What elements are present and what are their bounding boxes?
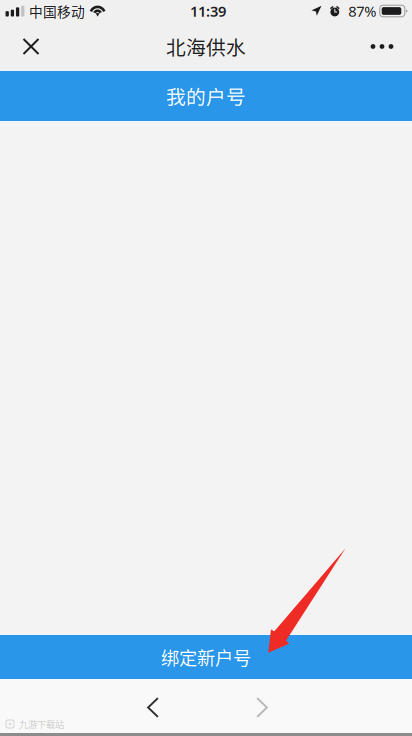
button[interactable]: 关闭 [9, 24, 53, 68]
button[interactable]: 前进 [233, 686, 291, 729]
button[interactable]: 绑定新户号 [0, 635, 412, 679]
button[interactable]: 后退 [124, 686, 182, 729]
staticText: 绑定新户号 [161, 644, 251, 670]
staticText: 九游下载站 [19, 717, 64, 731]
staticText: 北海供水 [166, 32, 246, 61]
staticText: 11:39 [190, 1, 226, 21]
staticText: 87% [348, 1, 376, 21]
button[interactable]: 更多 [360, 24, 404, 68]
staticText: 我的户号 [166, 82, 246, 110]
staticText: 中国移动 [29, 1, 85, 21]
